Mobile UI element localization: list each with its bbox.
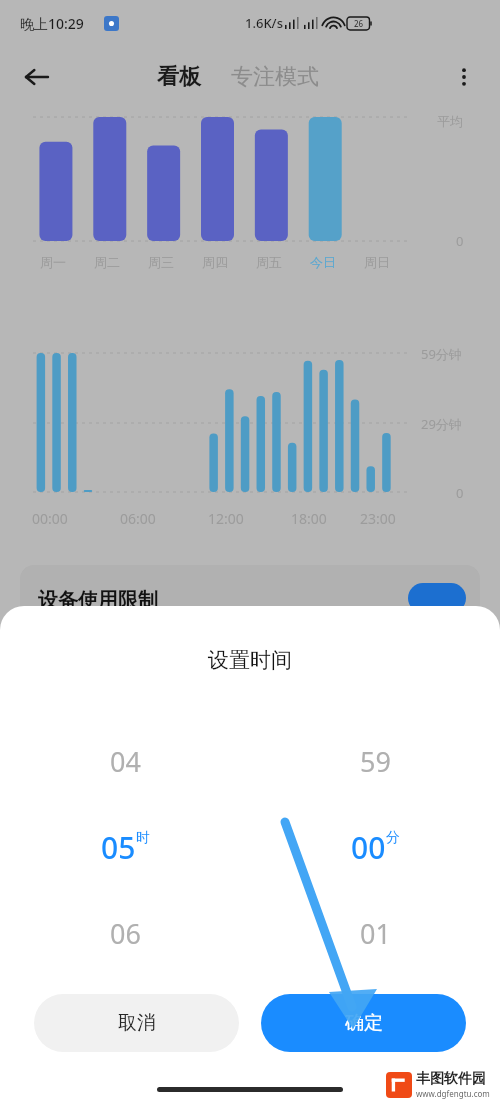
button[interactable]: More options	[442, 55, 486, 99]
staticText: 1.6K/s	[245, 14, 283, 32]
button[interactable]: 取消	[34, 994, 239, 1052]
staticText: 01	[360, 915, 391, 952]
staticText: 06	[110, 915, 141, 952]
staticText: www.dgfengtu.com	[416, 1088, 490, 1099]
staticText: 确定	[345, 1011, 383, 1035]
button[interactable]: 01	[250, 890, 500, 976]
staticText: 周二	[94, 254, 120, 270]
staticText: 今日	[310, 254, 336, 270]
staticText: 29分钟	[421, 415, 462, 433]
staticText: 时	[136, 829, 150, 847]
staticText: 设备使用限制	[38, 588, 158, 613]
staticText: 59	[360, 743, 391, 780]
staticText: 12:00	[208, 509, 244, 528]
button[interactable]: 59	[250, 718, 500, 804]
staticText: 05	[101, 827, 136, 868]
staticText: 晚上10:29	[20, 14, 84, 33]
staticText: 周一	[40, 254, 66, 270]
button[interactable]: 05	[0, 804, 250, 890]
staticText: 0	[456, 232, 464, 250]
button[interactable]: 04	[0, 718, 250, 804]
staticText: 专注模式	[231, 63, 319, 91]
staticText: 周三	[148, 254, 174, 270]
staticText: 周五	[256, 254, 282, 270]
staticText: 00	[351, 827, 386, 868]
button[interactable]: 00	[250, 804, 500, 890]
staticText: 周日	[364, 254, 390, 270]
staticText: 04	[110, 743, 141, 780]
staticText: 取消	[118, 1011, 156, 1035]
button[interactable]: 确定	[261, 994, 466, 1052]
staticText: 00:00	[32, 509, 68, 528]
staticText: 59分钟	[421, 345, 462, 363]
staticText: 看板	[157, 63, 201, 91]
button[interactable]: 看板	[151, 57, 207, 97]
staticText: 18:00	[291, 509, 327, 528]
staticText: 23:00	[360, 509, 396, 528]
staticText: 平均	[437, 113, 463, 129]
staticText: 周四	[202, 254, 228, 270]
staticText: 26	[354, 18, 364, 29]
staticText: 设置时间	[208, 647, 292, 673]
button[interactable]: 设备使用限制	[20, 565, 480, 685]
button[interactable]: Back	[14, 54, 60, 100]
button[interactable]: 专注模式	[225, 57, 325, 97]
button[interactable]: 06	[0, 890, 250, 976]
staticText: 06:00	[120, 509, 156, 528]
staticText: 分	[386, 829, 400, 847]
staticText: 丰图软件园	[416, 1070, 486, 1088]
staticText: 0	[456, 484, 464, 502]
